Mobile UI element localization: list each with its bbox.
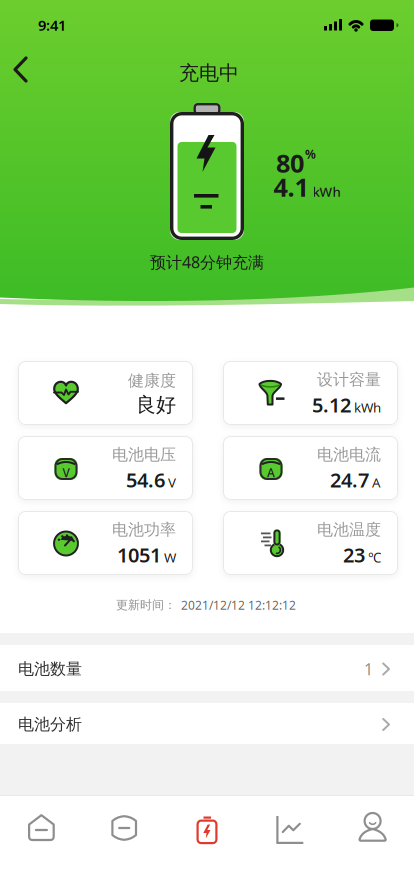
staticText: 5.12 — [312, 391, 351, 418]
staticText: A — [267, 464, 275, 480]
staticText: V — [62, 464, 69, 480]
button[interactable]: 统计 — [248, 796, 331, 896]
staticText: W — [164, 549, 176, 566]
staticText: % — [305, 146, 316, 162]
staticText: 电池数量 — [18, 659, 82, 679]
staticText: A — [372, 474, 381, 491]
staticText: 80 — [276, 146, 304, 180]
staticText: 良好 — [136, 392, 176, 417]
staticText: 电池电压 — [112, 445, 176, 465]
staticText: 电池温度 — [317, 520, 381, 540]
button[interactable]: Back — [10, 48, 44, 92]
button[interactable]: 首页 — [0, 796, 83, 896]
button[interactable]: 充电 — [166, 796, 248, 896]
button[interactable]: 电池数量 — [0, 645, 414, 691]
staticText: 9:41 — [38, 15, 66, 35]
staticText: 2021/12/12 12:12:12 — [181, 597, 296, 613]
staticText: 54.6 — [126, 466, 165, 493]
staticText: 预计48分钟充满 — [150, 251, 264, 273]
staticText: kWh — [312, 183, 340, 200]
button[interactable]: 电池分析 — [0, 703, 414, 744]
staticText: 24.7 — [330, 466, 369, 493]
staticText: 充电中 — [179, 61, 239, 85]
staticText: 1 — [364, 658, 373, 680]
staticText: 4.1 — [273, 170, 308, 204]
staticText: ℃ — [368, 549, 381, 566]
staticText: 电池电流 — [317, 445, 381, 465]
button[interactable]: 电池包 — [83, 796, 166, 896]
button[interactable]: 我的 — [331, 796, 414, 896]
staticText: 23 — [343, 541, 365, 568]
staticText: 1051 — [117, 541, 161, 568]
staticText: 电池分析 — [18, 715, 82, 734]
staticText: 电池功率 — [112, 520, 176, 540]
staticText: 设计容量 — [317, 370, 381, 390]
staticText: V — [168, 474, 176, 491]
staticText: 健康度 — [128, 371, 176, 391]
staticText: 更新时间： — [116, 598, 176, 612]
staticText: kWh — [354, 399, 381, 416]
